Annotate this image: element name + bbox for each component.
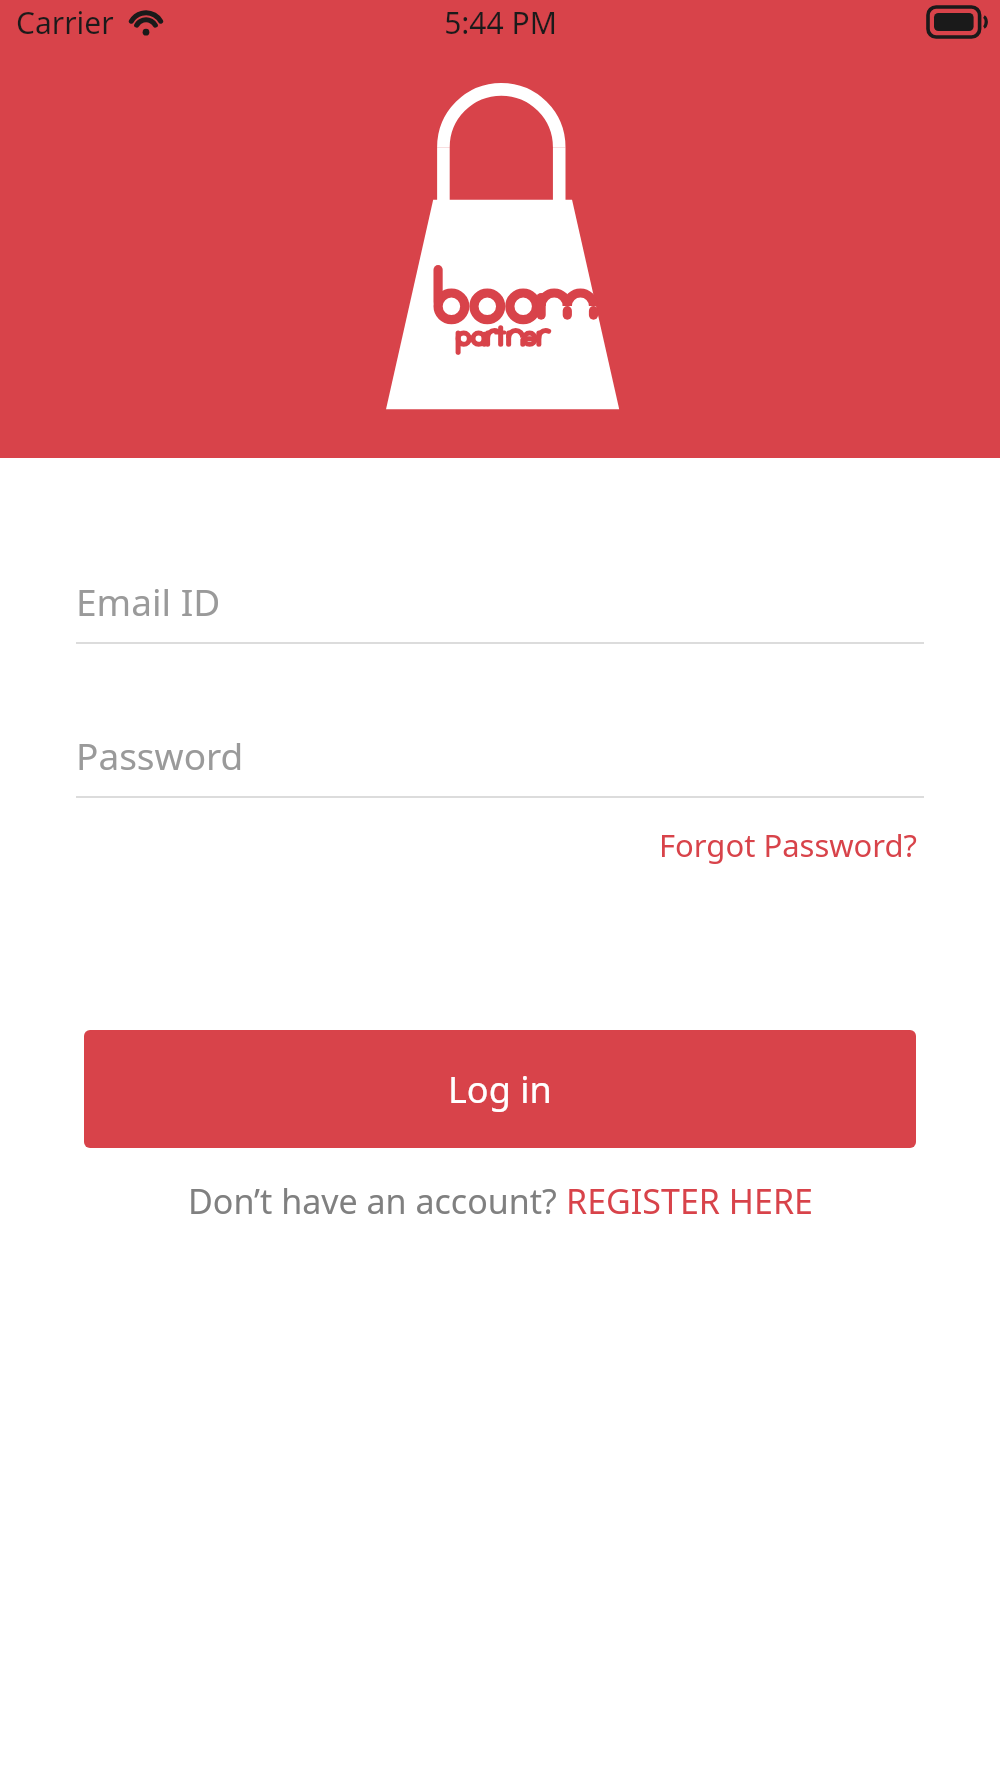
button[interactable]: Log in [84, 1030, 916, 1148]
staticText: Log in [448, 1065, 552, 1114]
staticText: Carrier [16, 2, 114, 43]
button[interactable]: Password [76, 730, 924, 798]
staticText: Password [76, 730, 244, 780]
other: Battery full [928, 7, 988, 37]
button[interactable]: Forgot Password? [659, 818, 918, 872]
staticText: 5:44 PM [444, 2, 557, 43]
button[interactable]: REGISTER HERE [566, 1174, 813, 1228]
staticText: Don’t have an account? [188, 1178, 566, 1224]
staticText: Forgot Password? [659, 824, 918, 866]
button[interactable]: Email ID [76, 576, 924, 644]
staticText: Email ID [76, 576, 221, 626]
staticText: REGISTER HERE [566, 1178, 813, 1224]
other: Wi-Fi signal [128, 7, 164, 35]
